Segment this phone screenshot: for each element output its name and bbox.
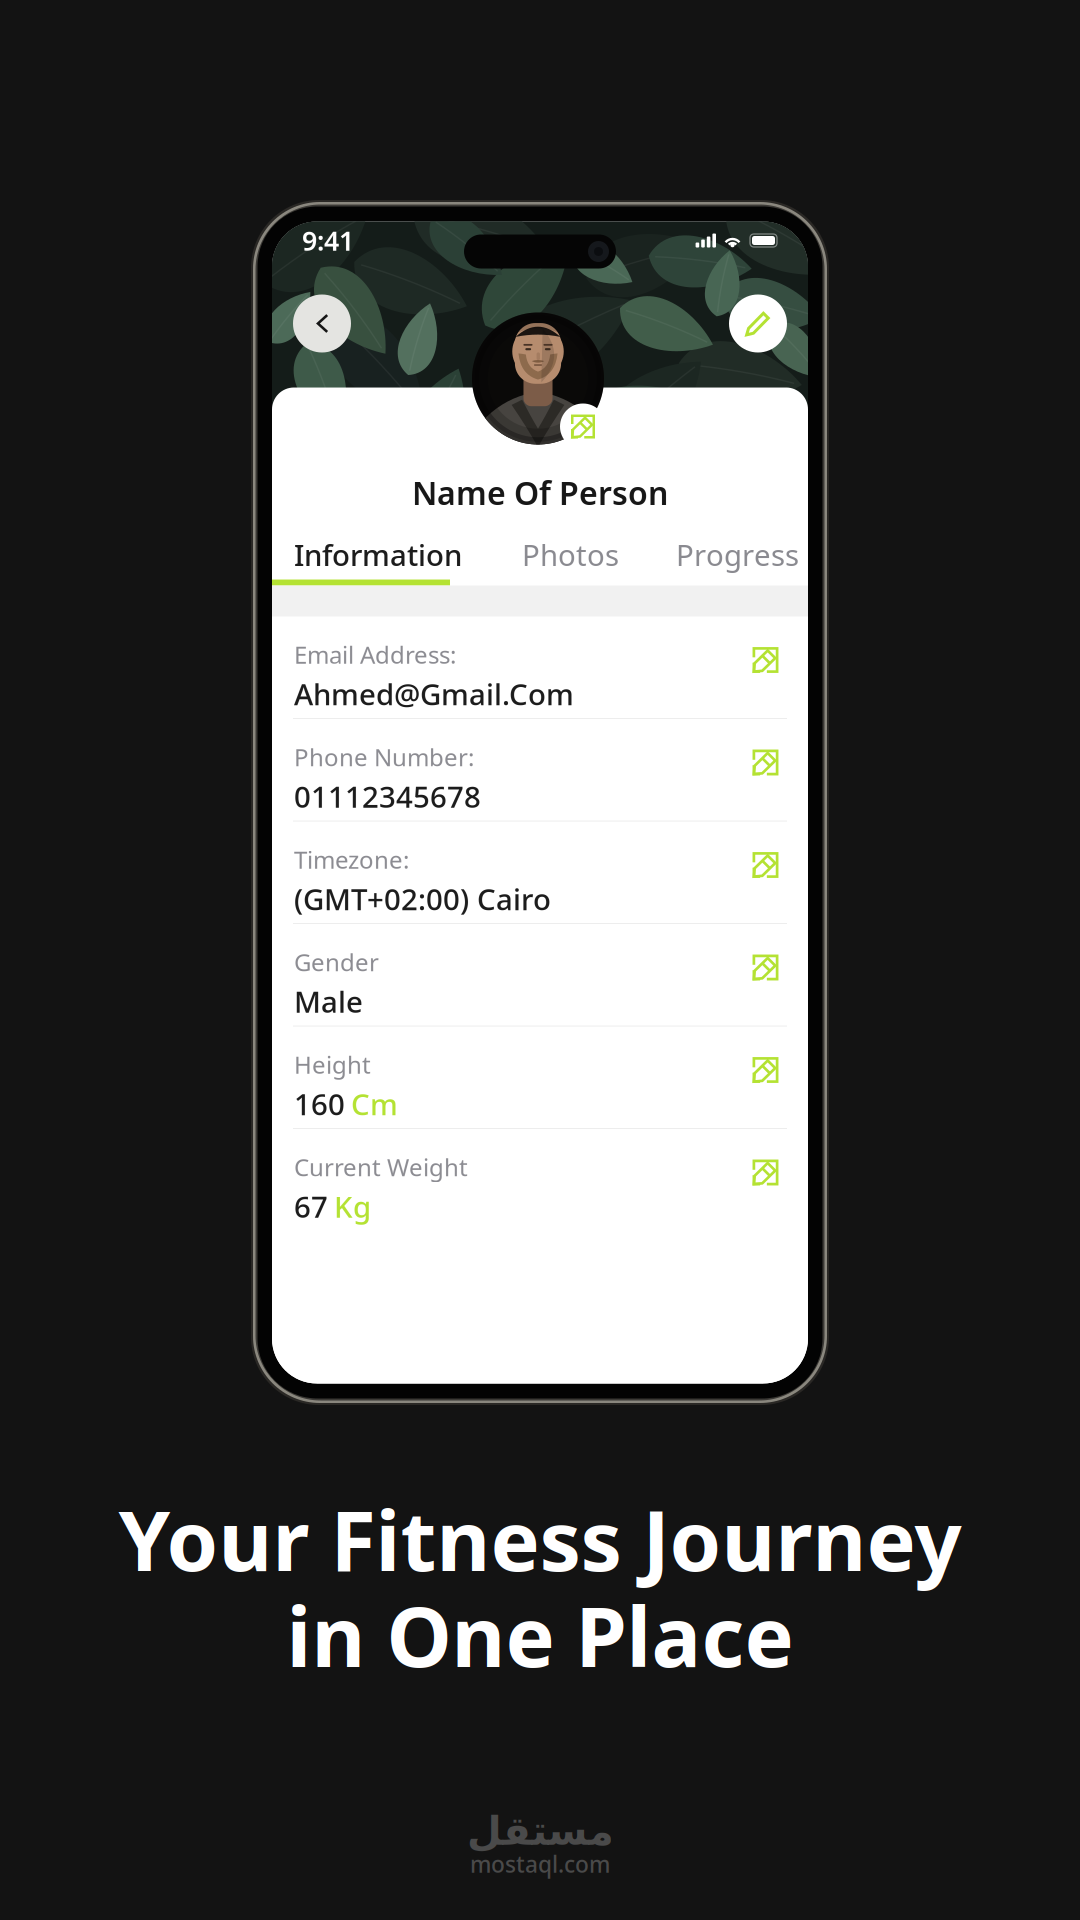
staticText: Your Fitness Journey <box>118 1484 961 1594</box>
staticText: Cm <box>351 1084 398 1123</box>
button[interactable]: Photos <box>450 529 628 585</box>
button[interactable]: Edit cover photo <box>729 294 787 352</box>
button[interactable]: Height <box>272 1026 808 1128</box>
staticText: Information <box>294 535 462 574</box>
staticText: in One Place <box>286 1580 793 1690</box>
button[interactable]: Information <box>272 529 450 585</box>
button[interactable]: Phone Number: <box>272 719 808 820</box>
staticText: (GMT+02:00) Cairo <box>294 879 551 918</box>
staticText: mostaql.com <box>470 1849 610 1879</box>
staticText: Height <box>294 1048 371 1080</box>
staticText: Phone Number: <box>294 741 474 773</box>
staticText: 160 <box>294 1084 345 1123</box>
button[interactable]: Back <box>293 294 351 352</box>
staticText: Photos <box>522 535 619 574</box>
staticText: Current Weight <box>294 1151 468 1183</box>
staticText: Name Of Person <box>412 471 668 514</box>
staticText: 01112345678 <box>294 777 481 816</box>
button[interactable]: Progress <box>628 529 808 585</box>
staticText: Gender <box>294 946 379 978</box>
button[interactable]: Current Weight <box>272 1129 808 1230</box>
staticText: Ahmed@Gmail.Com <box>294 674 574 713</box>
staticText: Timezone: <box>294 843 409 875</box>
staticText: مستقل <box>466 1808 613 1854</box>
button[interactable]: Gender <box>272 924 808 1025</box>
button[interactable]: Email Address: <box>272 616 808 718</box>
staticText: Progress <box>676 535 799 574</box>
staticText: Email Address: <box>294 638 456 670</box>
staticText: Male <box>294 982 363 1021</box>
staticText: 9:41 <box>302 223 354 258</box>
button[interactable]: Change profile photo <box>560 403 606 449</box>
button[interactable]: Timezone: <box>272 821 808 923</box>
staticText: Kg <box>334 1187 371 1226</box>
staticText: 67 <box>294 1187 328 1226</box>
